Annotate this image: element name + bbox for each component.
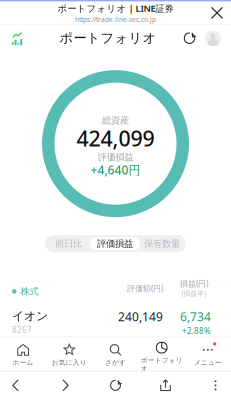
staticText: 評価損益 [97,151,133,163]
staticText: お気に入り [52,358,87,366]
button[interactable]: メニュー [185,341,231,370]
button[interactable]: 前日比 [47,237,90,250]
staticText: https://trade.line-sec.co.jp [75,15,156,24]
staticText: +4,640円 [90,162,140,178]
staticText: 6,734 [180,309,211,324]
staticText: 評価額(円) [127,283,163,294]
staticText: 株式 [20,286,38,297]
staticText: +2.88% [182,326,211,336]
staticText: 424,099 [76,124,154,152]
staticText: さがす [105,358,126,366]
staticText: 評価損益 [97,238,133,249]
button[interactable]: ホーム [0,341,46,370]
button[interactable]: アカウント [205,28,221,48]
staticText: ポートフォリオ [59,30,156,46]
button[interactable]: その他 [200,374,231,396]
button[interactable]: 再読み込み [100,374,131,396]
staticText: 前日比 [55,238,82,249]
staticText: ポートフォリオ [141,356,183,372]
staticText: ポートフォリオ | LINE証券 [57,2,173,14]
button[interactable]: さがす [92,341,139,370]
button[interactable]: 閉じる [203,1,231,25]
staticText: 保有数量 [144,238,180,249]
button[interactable]: 戻る [0,374,31,396]
staticText: 240,149 [118,309,163,324]
staticText: 8267 [12,324,32,335]
button[interactable]: ポートフォリオ [139,341,185,370]
button[interactable]: 進む [50,374,81,396]
button[interactable]: 評価損益 [90,237,140,250]
button[interactable]: 保有数量 [140,237,184,250]
button[interactable]: お気に入り [46,341,92,370]
staticText: 損益(円) [180,278,208,289]
button[interactable]: 共有 [150,374,181,396]
button[interactable]: イオン [0,309,231,337]
staticText: イオン [12,309,48,323]
staticText: ホーム [13,358,34,366]
staticText: (損益率) [181,289,206,298]
button[interactable]: LINE証券 [0,25,34,51]
staticText: メニュー [194,358,222,366]
staticText: 総資産 [102,115,129,126]
button[interactable]: 更新 [182,28,197,48]
